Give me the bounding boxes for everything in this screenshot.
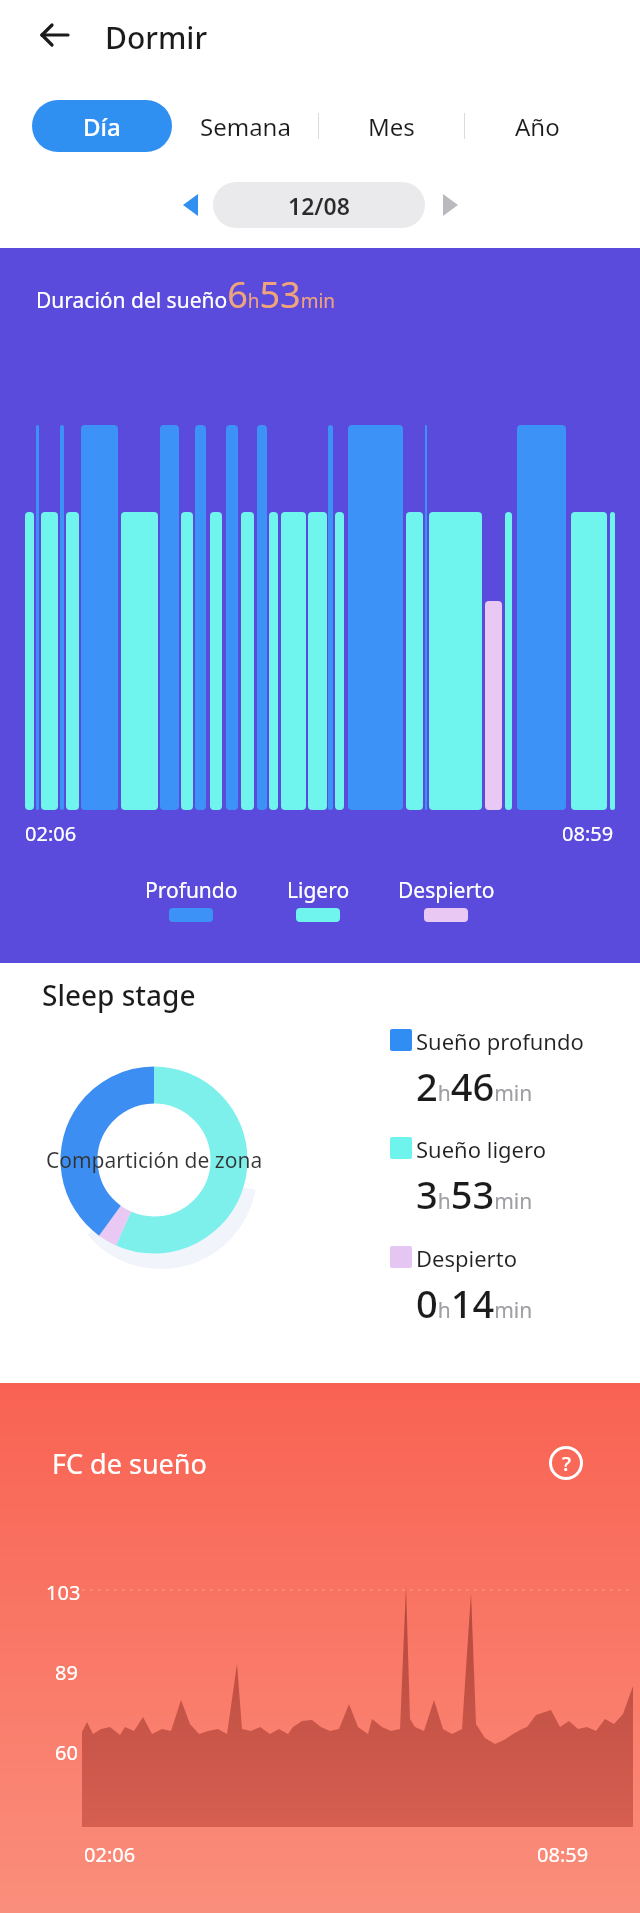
staticText: ? — [562, 1450, 571, 1477]
staticText: 89 — [55, 1659, 78, 1686]
staticText: Año — [515, 110, 560, 143]
staticText: 0h14min — [416, 1277, 533, 1329]
button[interactable]: ? — [548, 1445, 584, 1481]
staticText: 60 — [55, 1739, 78, 1766]
staticText: 08:59 — [537, 1841, 589, 1868]
staticText: 08:59 — [562, 820, 614, 847]
staticText: Sueño profundo — [416, 1026, 584, 1056]
staticText: FC de sueño — [52, 1445, 207, 1482]
staticText: Sueño ligero — [416, 1134, 546, 1164]
staticText: Profundo — [145, 876, 238, 905]
staticText: Despierto — [416, 1243, 517, 1273]
staticText: 2h46min — [416, 1060, 533, 1112]
button[interactable]: Año — [464, 100, 610, 152]
staticText: 02:06 — [84, 1841, 136, 1868]
button[interactable] — [30, 10, 80, 60]
staticText: Mes — [368, 110, 415, 143]
staticText: 3h53min — [416, 1168, 533, 1220]
staticText: Dormir — [105, 17, 208, 58]
staticText: Ligero — [287, 876, 350, 905]
staticText: Sleep stage — [42, 976, 196, 1014]
staticText: 103 — [46, 1579, 81, 1606]
staticText: 12/08 — [288, 190, 350, 221]
button[interactable] — [172, 185, 208, 225]
button[interactable]: Día — [32, 100, 172, 152]
staticText: Compartición de zona — [46, 1146, 263, 1175]
button[interactable]: Semana — [172, 100, 318, 152]
staticText: Duración del sueño6h53min — [36, 270, 336, 319]
staticText: 02:06 — [25, 820, 77, 847]
button[interactable]: 12/08 — [213, 182, 425, 228]
staticText: Día — [83, 110, 121, 143]
staticText: Semana — [200, 110, 291, 143]
staticText: Despierto — [398, 876, 495, 905]
button[interactable] — [432, 185, 468, 225]
button[interactable]: Mes — [318, 100, 464, 152]
